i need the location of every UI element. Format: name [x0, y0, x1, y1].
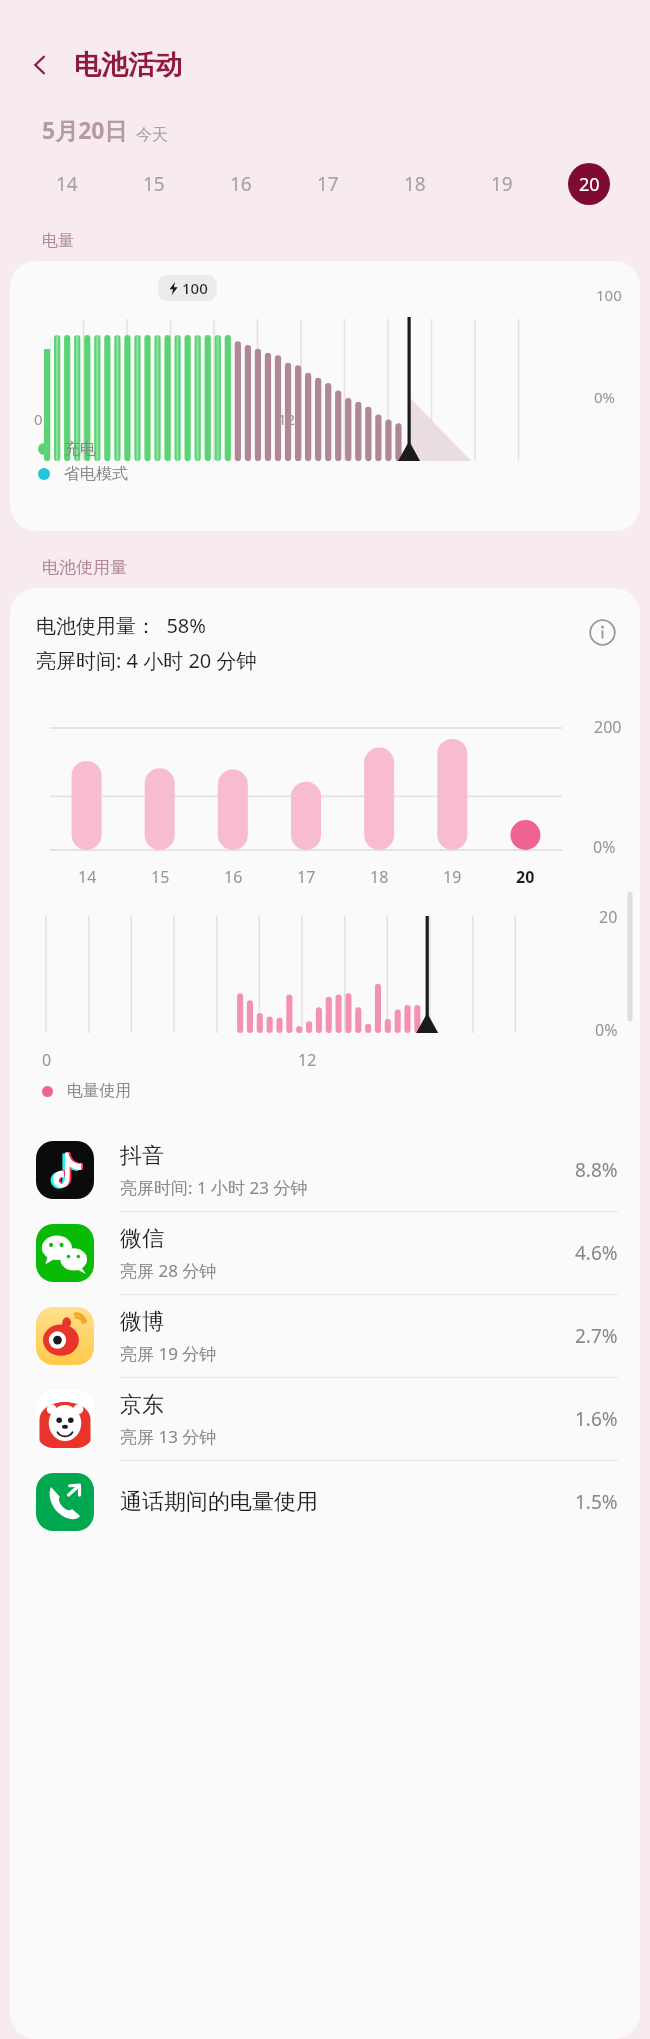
staticText: 17	[297, 866, 316, 888]
staticText: 8.8%	[575, 1157, 618, 1183]
button[interactable]: 微信	[10, 1212, 640, 1295]
staticText: 18	[370, 866, 389, 888]
staticText: 抖音	[120, 1142, 164, 1170]
staticText: 0	[42, 1049, 52, 1071]
staticText: 京东	[120, 1391, 164, 1419]
staticText: 20	[516, 866, 535, 888]
staticText: 0	[34, 409, 43, 429]
staticText: 微信	[120, 1225, 164, 1253]
button[interactable]: 14	[24, 161, 110, 207]
staticText: 电量使用	[67, 1081, 131, 1101]
button[interactable]: 微博	[10, 1295, 640, 1378]
staticText: 4.6%	[575, 1240, 618, 1266]
staticText: 电池使用量	[42, 557, 127, 578]
staticText: 电池活动	[74, 48, 182, 82]
staticText: 0%	[593, 836, 616, 858]
staticText: 1.6%	[575, 1406, 618, 1432]
staticText: 今天	[136, 125, 168, 145]
staticText: 200	[594, 716, 622, 738]
button[interactable]: 信息	[582, 612, 622, 652]
staticText: 100	[182, 278, 208, 298]
staticText: 17	[317, 171, 339, 197]
staticText: 15	[143, 171, 165, 197]
staticText: 充电	[64, 439, 96, 459]
staticText: 14	[56, 171, 78, 197]
button[interactable]: 20	[545, 161, 632, 207]
staticText: 16	[230, 171, 252, 197]
staticText: 12	[298, 1049, 317, 1071]
staticText: 14	[78, 866, 97, 888]
staticText: 100	[596, 285, 622, 305]
button[interactable]: 抖音	[10, 1129, 640, 1212]
staticText: 19	[491, 171, 513, 197]
staticText: 微博	[120, 1308, 164, 1336]
staticText: 电量	[42, 231, 74, 251]
staticText: 19	[443, 866, 462, 888]
staticText: 18	[404, 171, 426, 197]
button[interactable]: 15	[110, 161, 197, 207]
staticText: 0%	[595, 1019, 618, 1041]
staticText: 亮屏 28 分钟	[120, 1259, 217, 1282]
staticText: 16	[224, 866, 243, 888]
staticText: 亮屏 13 分钟	[120, 1425, 217, 1448]
staticText: 20	[579, 172, 600, 197]
button[interactable]: 通话期间的电量使用	[10, 1461, 640, 1543]
staticText: 电池使用量： 58%	[36, 612, 206, 639]
button[interactable]: 京东	[10, 1378, 640, 1461]
staticText: 亮屏 19 分钟	[120, 1342, 217, 1365]
button[interactable]: 返回	[16, 41, 64, 89]
staticText: 1.5%	[575, 1489, 618, 1515]
button[interactable]: 18	[371, 161, 458, 207]
staticText: 2.7%	[575, 1323, 618, 1349]
staticText: 省电模式	[64, 464, 128, 484]
staticText: 亮屏时间: 1 小时 23 分钟	[120, 1176, 308, 1199]
staticText: 12	[278, 409, 296, 429]
button[interactable]: 19	[458, 161, 545, 207]
button[interactable]: 16	[197, 161, 284, 207]
staticText: 20	[599, 906, 618, 928]
staticText: 亮屏时间: 4 小时 20 分钟	[36, 647, 257, 674]
staticText: 通话期间的电量使用	[120, 1488, 318, 1516]
button[interactable]: 17	[284, 161, 371, 207]
staticText: 15	[151, 866, 170, 888]
staticText: 5月20日	[42, 114, 128, 145]
staticText: 0%	[594, 387, 616, 407]
